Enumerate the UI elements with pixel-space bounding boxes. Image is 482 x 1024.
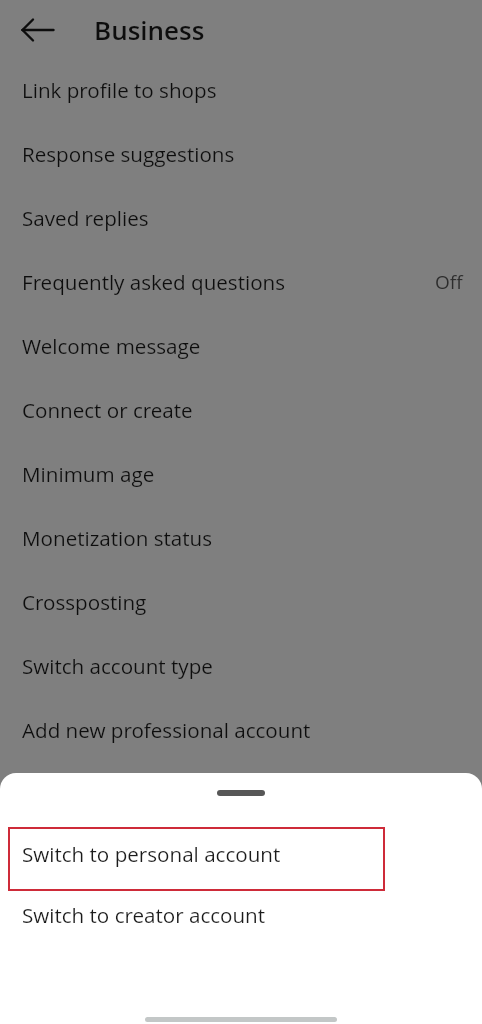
button[interactable]: Saved replies [0,186,482,250]
staticText: Add new professional account [22,716,311,744]
staticText: Frequently asked questions [22,268,286,296]
button[interactable]: Switch to personal account [0,823,482,884]
staticText: Switch account type [22,652,213,680]
staticText: Switch to personal account [22,840,281,868]
button[interactable]: Welcome message [0,314,482,378]
button[interactable]: Switch account type [0,634,482,698]
staticText: Off [435,269,463,295]
staticText: Business [94,12,205,47]
staticText: Minimum age [22,460,155,488]
button[interactable]: Add new professional account [0,698,482,762]
button[interactable]: Minimum age [0,442,482,506]
staticText: Monetization status [22,524,212,552]
staticText: Link profile to shops [22,76,217,104]
staticText: Switch to creator account [22,901,265,929]
button[interactable]: Crossposting [0,570,482,634]
button[interactable]: Frequently asked questions [0,250,482,314]
staticText: Response suggestions [22,140,235,168]
staticText: Welcome message [22,332,201,360]
button[interactable]: Connect or create [0,378,482,442]
button[interactable]: Link profile to shops [0,58,482,122]
button[interactable]: Switch to creator account [0,884,482,945]
button[interactable]: Response suggestions [0,122,482,186]
staticText: Crossposting [22,588,147,616]
button[interactable]: Monetization status [0,506,482,570]
staticText: Connect or create [22,396,193,424]
staticText: Saved replies [22,204,149,232]
button[interactable]: Back [0,0,75,58]
